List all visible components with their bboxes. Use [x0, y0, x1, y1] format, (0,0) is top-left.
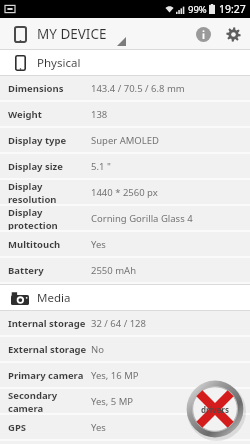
staticText: Yes, 5 MP — [91, 395, 134, 408]
staticText: Primary camera — [8, 369, 84, 382]
staticText: 143.4 / 70.5 / 6.8 mm — [91, 82, 185, 95]
staticText: 99% — [188, 3, 207, 16]
button[interactable]: Settings — [218, 19, 248, 49]
button[interactable]: Media — [0, 285, 250, 310]
button[interactable]: Info — [188, 19, 218, 49]
staticText: Display type — [8, 134, 67, 147]
staticText: Internal storage — [8, 317, 86, 330]
staticText: Battery — [8, 264, 44, 277]
staticText: Weight — [8, 108, 42, 121]
staticText: 19:27 — [219, 2, 246, 16]
staticText: Physical — [37, 55, 81, 71]
button[interactable]: Weight — [0, 102, 250, 126]
staticText: External storage — [8, 343, 87, 356]
staticText: GPS — [8, 421, 27, 434]
button[interactable]: GPS — [0, 415, 250, 439]
staticText: 138 — [91, 108, 108, 121]
staticText: Display resolution — [8, 180, 91, 204]
button[interactable]: Display resolution — [0, 180, 250, 204]
button[interactable]: Secondary camera — [0, 389, 250, 413]
staticText: Display protection — [8, 206, 91, 230]
staticText: 2550 mAh — [91, 264, 137, 277]
staticText: 5.1 " — [91, 160, 111, 173]
staticText: drivers — [201, 404, 229, 415]
button[interactable]: Display protection — [0, 206, 250, 230]
staticText: Display size — [8, 160, 63, 173]
button[interactable]: Physical — [0, 50, 250, 75]
staticText: Secondary camera — [8, 389, 91, 413]
button[interactable]: Battery — [0, 258, 250, 282]
staticText: Super AMOLED — [91, 134, 159, 147]
button[interactable]: Dimensions — [0, 76, 250, 100]
button[interactable]: My device — [6, 20, 34, 48]
staticText: 1440 * 2560 px — [91, 186, 158, 199]
staticText: 32 / 64 / 128 — [91, 317, 146, 330]
button[interactable]: Internal storage — [0, 311, 250, 335]
button[interactable]: Display size — [0, 154, 250, 178]
staticText: Dimensions — [8, 82, 64, 95]
button[interactable]: External storage — [0, 337, 250, 361]
staticText: Yes, 16 MP — [91, 369, 139, 382]
staticText: Yes — [91, 421, 106, 434]
button[interactable]: Multitouch — [0, 232, 250, 256]
staticText: MY DEVICE — [37, 25, 107, 43]
staticText: No — [91, 343, 104, 356]
staticText: Corning Gorilla Glass 4 — [91, 212, 193, 225]
button[interactable]: Display type — [0, 128, 250, 152]
staticText: Media — [37, 290, 71, 306]
button[interactable]: Primary camera — [0, 363, 250, 387]
staticText: Multitouch — [8, 238, 61, 251]
staticText: Yes — [91, 238, 106, 251]
